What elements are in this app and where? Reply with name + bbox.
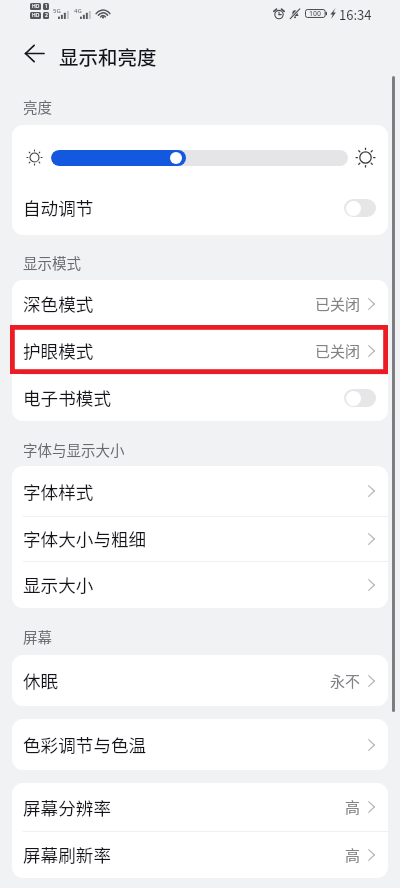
button[interactable]: 屏幕分辨率 <box>12 783 388 831</box>
staticText: 高 <box>345 844 361 866</box>
staticText: HD <box>32 12 40 19</box>
staticText: 永不 <box>330 670 361 692</box>
staticText: 屏幕 <box>23 626 52 647</box>
button[interactable]: 电子书模式 <box>12 374 388 421</box>
button[interactable]: 屏幕刷新率 <box>12 831 388 878</box>
staticText: 深色模式 <box>23 291 94 316</box>
button[interactable]: 色彩调节与色温 <box>12 719 388 770</box>
staticText: HD <box>32 3 40 10</box>
staticText: 字体样式 <box>23 479 94 504</box>
button[interactable]: 护眼模式 <box>12 327 388 374</box>
staticText: 已关闭 <box>315 293 361 315</box>
staticText: 休眠 <box>23 668 59 693</box>
button[interactable]: 自动调节 <box>12 180 388 235</box>
staticText: 屏幕刷新率 <box>23 842 111 867</box>
staticText: 16:34 <box>339 5 372 24</box>
staticText: 100 <box>309 9 322 19</box>
staticText: 显示和亮度 <box>59 42 157 70</box>
staticText: 电子书模式 <box>23 385 111 410</box>
staticText: 屏幕分辨率 <box>23 795 111 820</box>
staticText: 自动调节 <box>23 195 94 220</box>
staticText: 4G <box>74 7 82 15</box>
button[interactable]: 休眠 <box>12 655 388 706</box>
button[interactable]: 字体样式 <box>12 466 388 516</box>
button[interactable]: 显示大小 <box>12 561 388 608</box>
staticText: 亮度 <box>23 96 52 117</box>
staticText: 2 <box>45 12 48 19</box>
staticText: 字体与显示大小 <box>23 439 125 460</box>
staticText: 护眼模式 <box>23 338 94 363</box>
staticText: 5G <box>53 7 61 15</box>
button[interactable]: 深色模式 <box>12 280 388 327</box>
button[interactable]: 字体大小与粗细 <box>12 516 388 561</box>
staticText: 显示模式 <box>23 252 81 273</box>
staticText: 已关闭 <box>315 340 361 362</box>
button[interactable]: Back <box>18 37 50 69</box>
button[interactable]: Brightness <box>51 150 348 166</box>
staticText: 字体大小与粗细 <box>23 526 147 551</box>
staticText: 显示大小 <box>23 572 94 597</box>
staticText: 色彩调节与色温 <box>23 732 147 757</box>
staticText: 1 <box>45 3 48 10</box>
staticText: 高 <box>345 796 361 818</box>
